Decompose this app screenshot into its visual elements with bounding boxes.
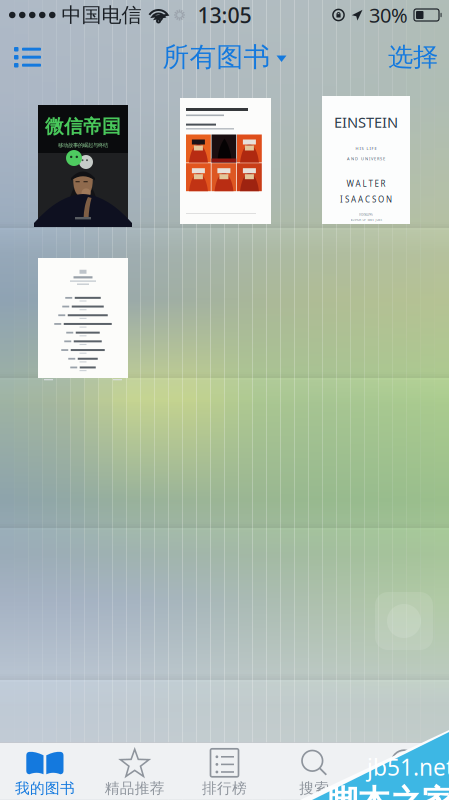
button[interactable]: 已购	[359, 741, 449, 800]
staticText: jb51.net	[367, 752, 449, 782]
staticText: 移动故事的崛起与终结	[58, 142, 108, 148]
staticText: H I S L I F E	[355, 146, 376, 151]
staticText: 所有图书	[162, 41, 270, 73]
staticText: 已购	[389, 779, 419, 797]
staticText: 搜索	[299, 779, 329, 797]
staticText: 中国电信	[61, 3, 141, 27]
staticText: AUTHOR OF STEVE JOBS	[350, 218, 381, 222]
staticText: 选择	[388, 41, 438, 72]
staticText: 微信帝国	[45, 115, 121, 138]
staticText: A N D U N I V E R S E	[347, 156, 385, 161]
staticText: 精品推荐	[105, 779, 165, 797]
button[interactable]: 我的图书	[0, 741, 90, 800]
button[interactable]: 精品推荐	[90, 741, 180, 800]
button[interactable]: 图书馆列表	[0, 32, 55, 81]
button[interactable]: 所有图书	[154, 33, 294, 81]
staticText: 我的图书	[15, 779, 75, 797]
staticText: 30%	[369, 2, 408, 28]
staticText: 13:05	[197, 1, 251, 29]
staticText: 排行榜	[202, 779, 247, 797]
staticText: W A L T E R	[346, 178, 385, 189]
staticText: 脚本之家	[326, 782, 449, 800]
staticText: EINSTEIN	[334, 112, 398, 132]
staticText: BESTSELLING	[359, 213, 373, 216]
staticText: I S A A C S O N	[340, 194, 392, 205]
button[interactable]: 选择	[377, 27, 449, 86]
button[interactable]: 搜索	[269, 741, 359, 800]
button[interactable]: 排行榜	[180, 741, 269, 800]
